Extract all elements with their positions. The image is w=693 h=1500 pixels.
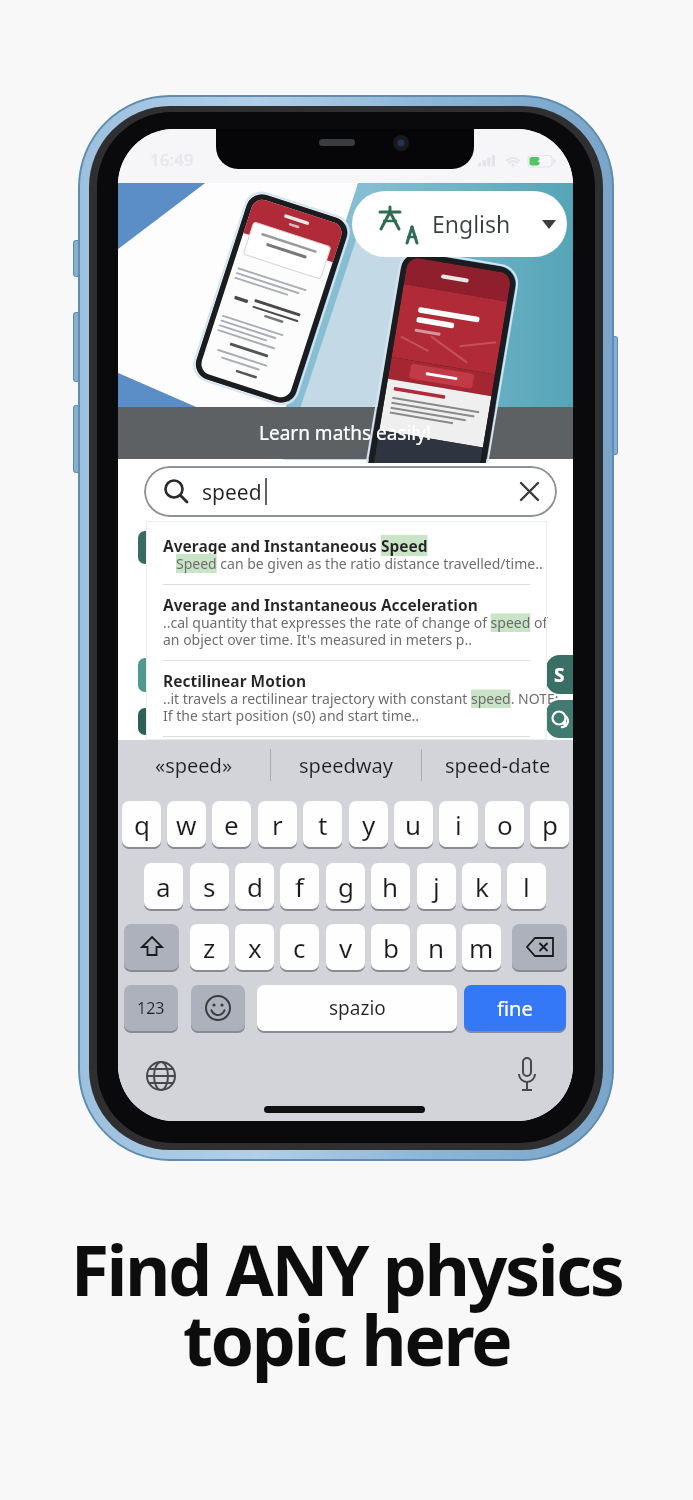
staticText: y bbox=[362, 807, 376, 842]
staticText: t bbox=[318, 807, 328, 842]
button[interactable]: v bbox=[326, 924, 365, 970]
staticText: s bbox=[203, 869, 216, 904]
button[interactable]: m bbox=[462, 924, 501, 970]
button[interactable]: Average and Instantaneous Acceleration bbox=[146, 594, 547, 658]
staticText: g bbox=[338, 869, 354, 904]
button[interactable]: S bbox=[546, 655, 573, 694]
button[interactable] bbox=[145, 1060, 177, 1092]
staticText: speedway bbox=[299, 752, 393, 779]
button[interactable]: r bbox=[258, 801, 297, 847]
button[interactable]: f bbox=[280, 863, 319, 909]
staticText: speed-date bbox=[445, 752, 551, 779]
staticText: Average and Instantaneous Acceleration bbox=[163, 594, 478, 615]
button[interactable] bbox=[546, 700, 573, 738]
button[interactable]: e bbox=[212, 801, 251, 847]
button[interactable]: w bbox=[167, 801, 206, 847]
staticText: a bbox=[156, 869, 171, 904]
staticText: spazio bbox=[329, 995, 386, 1021]
staticText: i bbox=[455, 807, 462, 842]
button[interactable] bbox=[516, 1058, 538, 1094]
staticText: p bbox=[542, 807, 558, 842]
staticText: k bbox=[475, 869, 489, 904]
button[interactable]: c bbox=[280, 924, 319, 970]
staticText: m bbox=[469, 930, 494, 965]
button[interactable] bbox=[191, 985, 245, 1031]
staticText: ..cal quantity that expresses the rate o… bbox=[163, 613, 548, 649]
button[interactable]: speed-date bbox=[422, 740, 573, 790]
staticText: Speed can be given as the ratio distance… bbox=[176, 554, 543, 573]
staticText: h bbox=[382, 869, 399, 904]
staticText: Find ANY physics bbox=[0, 1221, 693, 1316]
staticText: d bbox=[247, 869, 263, 904]
button[interactable]: t bbox=[303, 801, 342, 847]
staticText: o bbox=[497, 807, 513, 842]
button[interactable]: n bbox=[417, 924, 456, 970]
staticText: Learn maths easily! bbox=[259, 420, 432, 446]
button[interactable]: a bbox=[144, 863, 183, 909]
staticText: 16:49 bbox=[150, 148, 194, 171]
button[interactable]: z bbox=[190, 924, 229, 970]
staticText: speed bbox=[202, 478, 262, 507]
button[interactable] bbox=[512, 924, 567, 970]
button[interactable] bbox=[124, 924, 179, 970]
button[interactable]: j bbox=[417, 863, 456, 909]
staticText: x bbox=[248, 930, 262, 965]
staticText: c bbox=[293, 930, 306, 965]
staticText: topic here bbox=[0, 1291, 693, 1386]
button[interactable]: d bbox=[235, 863, 274, 909]
staticText: j bbox=[433, 869, 440, 904]
button[interactable]: g bbox=[326, 863, 365, 909]
staticText: S bbox=[554, 662, 565, 688]
button[interactable]: Average and Instantaneous Speed bbox=[146, 535, 547, 584]
staticText: e bbox=[224, 807, 239, 842]
staticText: f bbox=[295, 869, 304, 904]
staticText: l bbox=[523, 869, 530, 904]
button[interactable]: x bbox=[235, 924, 274, 970]
staticText: 123 bbox=[137, 997, 165, 1019]
button[interactable]: y bbox=[349, 801, 388, 847]
button[interactable]: s bbox=[190, 863, 229, 909]
button[interactable]: l bbox=[507, 863, 546, 909]
button[interactable]: English bbox=[352, 191, 567, 257]
button[interactable]: h bbox=[371, 863, 410, 909]
staticText: u bbox=[405, 807, 422, 842]
button[interactable]: q bbox=[122, 801, 161, 847]
button[interactable]: fine bbox=[464, 985, 566, 1031]
button[interactable]: 123 bbox=[124, 985, 178, 1031]
staticText: fine bbox=[497, 995, 533, 1022]
staticText: ..it travels a rectilinear trajectory wi… bbox=[163, 689, 559, 725]
staticText: «speed» bbox=[155, 752, 233, 779]
button[interactable]: p bbox=[530, 801, 569, 847]
staticText: English bbox=[432, 208, 511, 239]
button[interactable]: speedway bbox=[271, 740, 421, 790]
staticText: w bbox=[176, 807, 197, 842]
button[interactable]: b bbox=[371, 924, 410, 970]
button[interactable]: spazio bbox=[257, 985, 457, 1031]
button[interactable]: k bbox=[462, 863, 501, 909]
staticText: Rectilinear Motion bbox=[163, 670, 307, 691]
staticText: Average and Instantaneous Speed bbox=[163, 535, 428, 556]
staticText: v bbox=[339, 930, 353, 965]
button[interactable]: speed bbox=[144, 466, 557, 517]
staticText: z bbox=[203, 930, 216, 965]
staticText: r bbox=[272, 807, 283, 842]
staticText: q bbox=[134, 807, 150, 842]
staticText: n bbox=[428, 930, 445, 965]
button[interactable]: u bbox=[394, 801, 433, 847]
staticText: b bbox=[383, 930, 399, 965]
button[interactable]: o bbox=[485, 801, 524, 847]
button[interactable]: i bbox=[439, 801, 478, 847]
button[interactable]: Rectilinear Motion bbox=[146, 670, 547, 734]
button[interactable]: «speed» bbox=[118, 740, 270, 790]
